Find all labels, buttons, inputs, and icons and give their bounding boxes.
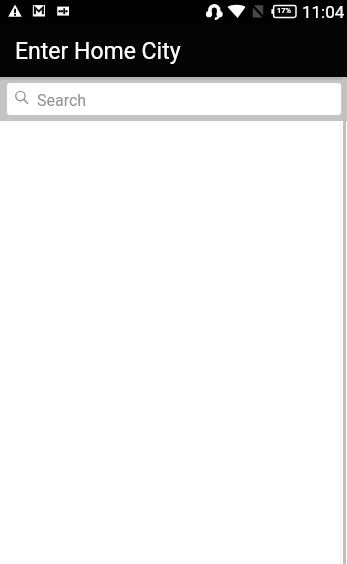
staticText: Search: [37, 91, 87, 110]
staticText: Enter Home City: [15, 38, 181, 65]
button[interactable]: Search for a city: [7, 83, 341, 115]
staticText: 11:04: [302, 2, 345, 22]
staticText: 17%: [277, 6, 292, 15]
